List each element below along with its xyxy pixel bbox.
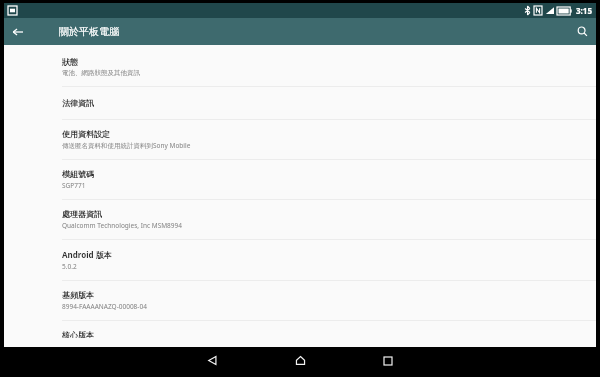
button[interactable]: 法律資訊	[4, 87, 596, 120]
button[interactable]: Android 版本	[4, 240, 596, 281]
button[interactable]: Back	[190, 347, 234, 374]
button[interactable]: Recent apps	[366, 347, 410, 374]
button[interactable]: 核心版本	[4, 321, 596, 347]
button[interactable]: 處理器資訊	[4, 200, 596, 240]
staticText: 電池、網路狀態及其他資訊	[62, 69, 140, 77]
staticText: Android 版本	[62, 249, 112, 260]
staticText: 傳送匿名資料和使用統計資料到Sony Mobile	[62, 141, 191, 150]
staticText: 關於平板電腦	[59, 25, 119, 38]
staticText: 5.0.2	[62, 262, 77, 271]
button[interactable]: Search	[569, 18, 596, 45]
staticText: 8994-FAAAANAZQ-00008-04	[62, 302, 147, 311]
staticText: SGP771	[62, 181, 86, 190]
button[interactable]: 基頻版本	[4, 281, 596, 321]
button[interactable]: Home	[278, 347, 322, 374]
staticText: 核心版本	[62, 330, 94, 338]
staticText: 處理器資訊	[62, 209, 102, 219]
button[interactable]: 使用資料設定	[4, 120, 596, 160]
staticText: 法律資訊	[62, 98, 94, 108]
button[interactable]: Back	[4, 18, 31, 45]
staticText: 3:15	[576, 5, 592, 16]
button[interactable]: 狀態	[4, 48, 596, 87]
staticText: 基頻版本	[62, 290, 94, 300]
button[interactable]: 模組號碼	[4, 160, 596, 200]
staticText: 使用資料設定	[62, 129, 110, 139]
staticText: Qualcomm Technologies, Inc MSM8994	[62, 221, 182, 230]
staticText: 模組號碼	[62, 169, 94, 179]
staticText: 狀態	[62, 57, 78, 67]
